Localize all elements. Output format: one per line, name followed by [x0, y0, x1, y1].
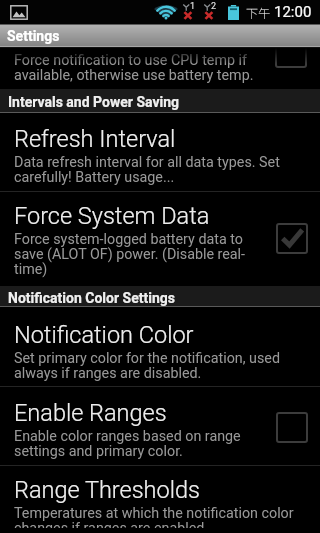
staticText: 12:00	[274, 3, 312, 21]
staticText: Intervals and Power Saving	[8, 94, 180, 110]
staticText: Range Thresholds	[14, 476, 200, 504]
staticText: Data refresh interval for all data types…	[14, 154, 280, 186]
staticText: Set primary color for the notification, …	[14, 350, 280, 382]
staticText: Refresh Interval	[14, 125, 176, 153]
staticText: 下午	[246, 4, 271, 21]
button[interactable]: Force notification to use CPU temp if av…	[0, 48, 320, 89]
staticText: Force System Data	[14, 202, 210, 230]
staticText: 1	[190, 1, 196, 12]
staticText: Notification Color Settings	[8, 290, 175, 306]
button[interactable]: Force System Data	[0, 192, 320, 286]
button[interactable]: Notification Color	[0, 307, 320, 386]
button[interactable]: Enable Ranges	[0, 387, 320, 465]
staticText: Temperatures at which the notification c…	[14, 505, 294, 528]
staticText: Enable color ranges based on range setti…	[14, 428, 241, 460]
staticText: Settings	[7, 28, 60, 44]
staticText: Force system-logged battery data to save…	[14, 231, 246, 278]
staticText: 2	[211, 1, 217, 12]
button[interactable]: Range Thresholds	[0, 466, 320, 533]
staticText: Notification Color	[14, 321, 194, 349]
staticText: Force notification to use CPU temp if av…	[14, 52, 254, 84]
button[interactable]: Refresh Interval	[0, 113, 320, 191]
staticText: Enable Ranges	[14, 399, 167, 427]
